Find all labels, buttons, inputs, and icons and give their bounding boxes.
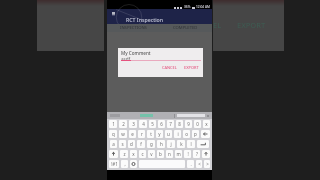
staticText: x <box>132 151 135 157</box>
staticText: e <box>131 131 134 137</box>
button[interactable]: 3 <box>129 120 137 128</box>
staticText: y <box>158 131 161 137</box>
staticText: 4 <box>142 121 145 127</box>
staticText: v <box>150 151 153 157</box>
button[interactable]: l <box>187 140 195 148</box>
button[interactable]: Emoji <box>130 160 137 168</box>
button[interactable]: !#1 <box>109 160 119 168</box>
staticText: s <box>121 141 124 147</box>
staticText: z <box>123 151 126 157</box>
button[interactable]: y <box>156 130 163 138</box>
staticText: COMPLETED <box>173 25 198 31</box>
button[interactable]: t <box>147 130 154 138</box>
button[interactable]: CANCEL <box>161 65 178 70</box>
button[interactable]: < <box>196 160 202 168</box>
button[interactable]: Shift <box>202 150 210 158</box>
staticText: h <box>160 141 163 147</box>
staticText: d <box>130 141 133 147</box>
button[interactable]: e <box>129 130 136 138</box>
staticText: t <box>150 131 152 137</box>
staticText: EL <box>213 20 222 30</box>
button[interactable]: j <box>167 140 175 148</box>
button[interactable]: m <box>175 150 182 158</box>
button[interactable]: 8 <box>176 120 183 128</box>
button[interactable]: v <box>148 150 155 158</box>
button[interactable]: c <box>139 150 146 158</box>
staticText: ? <box>196 151 198 157</box>
button[interactable]: Previous screenshot <box>37 0 104 51</box>
staticText: a <box>112 141 115 147</box>
button[interactable]: 5 <box>149 120 156 128</box>
button[interactable]: r <box>138 130 145 138</box>
button[interactable]: 1 <box>109 120 117 128</box>
staticText: g <box>150 141 153 147</box>
staticText: 5 <box>151 121 154 127</box>
button[interactable]: x <box>203 120 210 128</box>
staticText: q <box>112 131 115 137</box>
staticText: EXPORT <box>237 20 266 30</box>
button[interactable]: o <box>183 130 190 138</box>
button[interactable]: ! <box>184 150 191 158</box>
button[interactable]: 9 <box>185 120 192 128</box>
button[interactable]: 6 <box>158 120 165 128</box>
staticText: asdf <box>121 56 131 62</box>
button[interactable]: Enter <box>197 140 209 148</box>
staticText: 9 <box>187 121 190 127</box>
button[interactable]: . <box>187 160 194 168</box>
staticText: k <box>180 141 183 147</box>
button[interactable]: d <box>128 140 135 148</box>
staticText: 3 <box>132 121 135 127</box>
staticText: 7 <box>169 121 172 127</box>
staticText: 6 <box>160 121 163 127</box>
button[interactable]: ? <box>193 150 200 158</box>
staticText: c <box>141 151 144 157</box>
button[interactable]: 4 <box>139 120 147 128</box>
button[interactable]: q <box>109 130 117 138</box>
button[interactable]: 0 <box>194 120 201 128</box>
button[interactable]: COMPLETED <box>159 24 212 32</box>
button[interactable]: Open navigation drawer <box>110 10 116 16</box>
staticText: 12:04 AM <box>196 5 210 9</box>
button[interactable]: i <box>174 130 181 138</box>
button[interactable]: , <box>121 160 128 168</box>
staticText: > <box>206 161 209 167</box>
button[interactable]: u <box>165 130 172 138</box>
button[interactable]: s <box>119 140 126 148</box>
button[interactable]: h <box>157 140 165 148</box>
staticText: f <box>140 141 142 147</box>
staticText: n <box>168 151 171 157</box>
staticText: i <box>177 131 179 137</box>
button[interactable]: g <box>147 140 155 148</box>
button[interactable]: Shift <box>109 150 118 158</box>
button[interactable]: 7 <box>167 120 174 128</box>
staticText: l <box>190 141 192 147</box>
button[interactable]: n <box>166 150 173 158</box>
staticText: EXPORT <box>184 65 199 70</box>
staticText: o <box>185 131 188 137</box>
button[interactable]: z <box>120 150 128 158</box>
button[interactable]: f <box>137 140 145 148</box>
staticText: x <box>205 121 208 127</box>
staticText: , <box>124 161 126 167</box>
button[interactable]: > <box>204 160 210 168</box>
button[interactable]: b <box>157 150 164 158</box>
button[interactable]: EXPORT <box>183 65 200 70</box>
button[interactable]: INSPECTIONS <box>107 24 159 32</box>
staticText: 0 <box>196 121 199 127</box>
staticText: ! <box>187 151 189 157</box>
button[interactable]: k <box>177 140 185 148</box>
button[interactable]: p <box>192 130 199 138</box>
button[interactable]: 2 <box>119 120 127 128</box>
staticText: w <box>121 131 125 137</box>
staticText: CANCEL <box>162 65 177 70</box>
staticText: INSPECTIONS <box>120 25 147 31</box>
button[interactable]: a <box>110 140 117 148</box>
staticText: !#1 <box>111 161 118 167</box>
staticText: r <box>141 131 143 137</box>
button[interactable]: Next screenshot <box>213 0 284 51</box>
button[interactable]: w <box>119 130 127 138</box>
staticText: 2 <box>122 121 125 127</box>
button[interactable]: Backspace <box>201 130 210 138</box>
button[interactable]: x <box>130 150 137 158</box>
